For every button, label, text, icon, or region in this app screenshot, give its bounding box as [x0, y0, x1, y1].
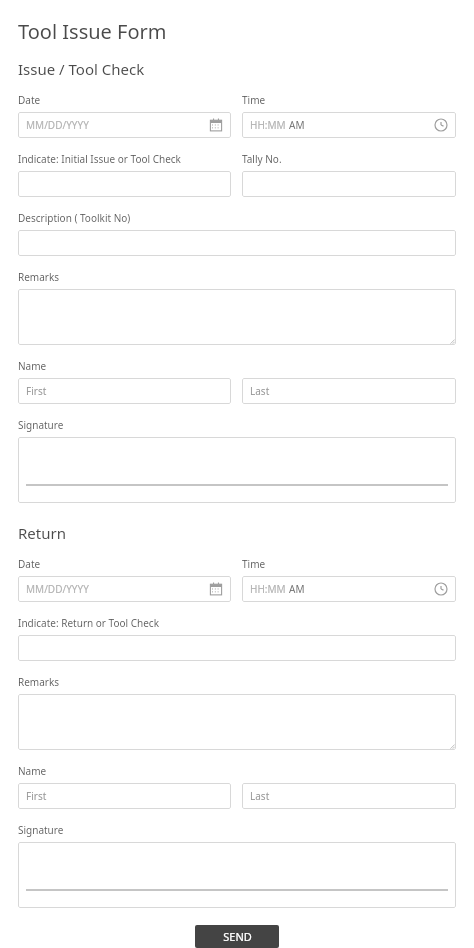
staticText: Remarks: [18, 270, 60, 284]
staticText: Time: [242, 93, 266, 107]
staticText: Date: [18, 557, 41, 571]
staticText: Name: [18, 764, 47, 778]
button[interactable]: MM/DD/YYYY: [18, 576, 231, 602]
button[interactable]: Signature pad: [18, 842, 456, 908]
staticText: Description ( Toolkit No): [18, 211, 131, 225]
button[interactable]: [18, 230, 456, 256]
staticText: Indicate: Initial Issue or Tool Check: [18, 152, 181, 166]
button[interactable]: First: [18, 783, 231, 809]
button[interactable]: MM/DD/YYYY: [18, 112, 231, 138]
staticText: Signature: [18, 418, 64, 432]
staticText: Remarks: [18, 675, 60, 689]
button[interactable]: First: [18, 378, 231, 404]
staticText: Indicate: Return or Tool Check: [18, 616, 159, 630]
staticText: Return: [18, 523, 66, 543]
staticText: Signature: [18, 823, 64, 837]
staticText: SEND: [223, 929, 252, 944]
button[interactable]: [18, 171, 231, 197]
other: Pick time: [434, 582, 448, 596]
other: Pick date: [209, 118, 223, 132]
staticText: First: [26, 789, 47, 803]
staticText: Tool Issue Form: [18, 18, 167, 45]
button[interactable]: Last: [242, 378, 456, 404]
other: Pick date: [209, 582, 223, 596]
button[interactable]: Signature pad: [18, 437, 456, 503]
other: Pick time: [434, 118, 448, 132]
staticText: AM: [289, 582, 305, 596]
staticText: Time: [242, 557, 266, 571]
button[interactable]: [18, 635, 456, 661]
staticText: Tally No.: [242, 152, 282, 166]
staticText: Name: [18, 359, 47, 373]
button[interactable]: [242, 171, 456, 197]
staticText: Issue / Tool Check: [18, 59, 145, 79]
button[interactable]: Last: [242, 783, 456, 809]
staticText: First: [26, 384, 47, 398]
button[interactable]: [18, 289, 456, 345]
button[interactable]: SEND: [195, 925, 279, 948]
staticText: MM/DD/YYYY: [26, 118, 89, 132]
staticText: AM: [289, 118, 305, 132]
staticText: HH:MM: [250, 582, 289, 596]
button[interactable]: HH:MM: [242, 576, 456, 602]
staticText: Date: [18, 93, 41, 107]
staticText: HH:MM: [250, 118, 289, 132]
staticText: MM/DD/YYYY: [26, 582, 89, 596]
button[interactable]: [18, 694, 456, 750]
staticText: Last: [250, 384, 270, 398]
staticText: Last: [250, 789, 270, 803]
button[interactable]: HH:MM: [242, 112, 456, 138]
